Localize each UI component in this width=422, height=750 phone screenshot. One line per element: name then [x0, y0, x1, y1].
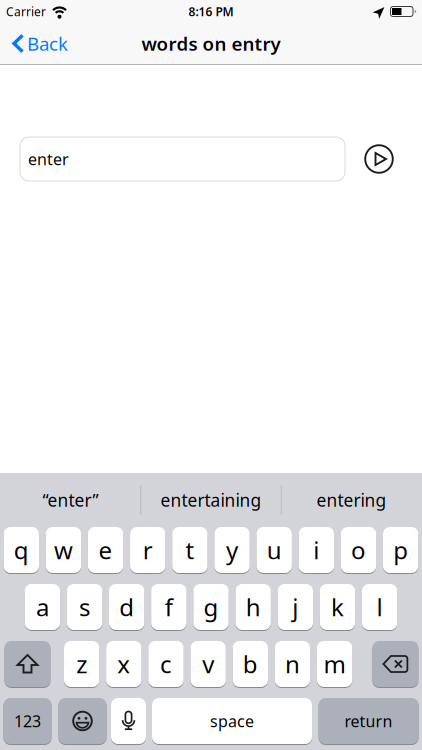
staticText: u	[267, 534, 282, 566]
staticText: i	[313, 534, 319, 566]
button[interactable]: l	[362, 583, 397, 630]
button[interactable]: Delete	[372, 640, 418, 687]
button[interactable]: r	[130, 526, 165, 573]
button[interactable]: d	[109, 583, 144, 630]
button[interactable]: x	[106, 640, 141, 687]
button[interactable]: j	[278, 583, 313, 630]
button[interactable]: 123	[3, 697, 51, 744]
button[interactable]: g	[193, 583, 229, 630]
staticText: 123	[14, 710, 41, 732]
button[interactable]: Play	[364, 144, 394, 174]
staticText: h	[246, 591, 261, 623]
staticText: space	[210, 710, 254, 732]
button[interactable]: entertaining	[141, 477, 281, 523]
button[interactable]: Back	[0, 31, 68, 56]
staticText: y	[226, 534, 238, 566]
staticText: j	[292, 591, 298, 623]
button[interactable]: q	[4, 526, 39, 573]
button[interactable]: Shift	[4, 640, 50, 687]
staticText: k	[331, 591, 344, 623]
button[interactable]: Emoji	[58, 697, 106, 744]
staticText: return	[345, 710, 393, 732]
button[interactable]: e	[88, 526, 123, 573]
staticText: n	[285, 648, 300, 680]
staticText: c	[160, 648, 172, 680]
button[interactable]: f	[151, 583, 187, 630]
staticText: v	[202, 648, 214, 680]
staticText: b	[243, 648, 258, 680]
staticText: g	[203, 591, 218, 623]
button[interactable]: a	[25, 583, 60, 630]
button[interactable]: o	[341, 526, 376, 573]
staticText: x	[117, 648, 130, 680]
staticText: entertaining	[160, 488, 261, 511]
button[interactable]: n	[275, 640, 310, 687]
button[interactable]: h	[235, 583, 271, 630]
button[interactable]: s	[67, 583, 102, 630]
staticText: r	[143, 534, 153, 566]
button[interactable]: z	[64, 640, 99, 687]
staticText: entering	[317, 488, 387, 511]
staticText: “enter”	[42, 488, 98, 511]
button[interactable]: w	[46, 526, 81, 573]
staticText: enter	[28, 148, 69, 170]
button[interactable]: space	[152, 697, 312, 744]
staticText: m	[324, 648, 346, 680]
button[interactable]: Dictate	[111, 697, 146, 744]
staticText: p	[393, 534, 408, 566]
staticText: w	[54, 534, 73, 566]
staticText: Back	[27, 31, 68, 56]
staticText: o	[351, 534, 366, 566]
button[interactable]: t	[172, 526, 208, 573]
staticText: z	[76, 648, 87, 680]
staticText: f	[165, 591, 173, 623]
button[interactable]: y	[214, 526, 250, 573]
button[interactable]: v	[190, 640, 226, 687]
staticText: words on entry	[141, 31, 280, 56]
button[interactable]: c	[148, 640, 184, 687]
button[interactable]: “enter”	[0, 477, 141, 523]
button[interactable]: i	[299, 526, 334, 573]
button[interactable]: m	[317, 640, 352, 687]
button[interactable]: return	[319, 697, 419, 744]
staticText: d	[119, 591, 134, 623]
staticText: Carrier	[6, 3, 46, 19]
staticText: t	[185, 534, 194, 566]
button[interactable]: b	[233, 640, 268, 687]
button[interactable]: p	[383, 526, 418, 573]
button[interactable]: entering	[281, 477, 422, 523]
staticText: e	[99, 534, 113, 566]
button[interactable]: k	[320, 583, 355, 630]
staticText: q	[14, 534, 29, 566]
staticText: s	[79, 591, 90, 623]
staticText: a	[36, 591, 49, 623]
button[interactable]: u	[256, 526, 292, 573]
button[interactable]: enter	[20, 137, 345, 181]
staticText: 8:16 PM	[188, 3, 233, 19]
staticText: l	[377, 591, 383, 623]
